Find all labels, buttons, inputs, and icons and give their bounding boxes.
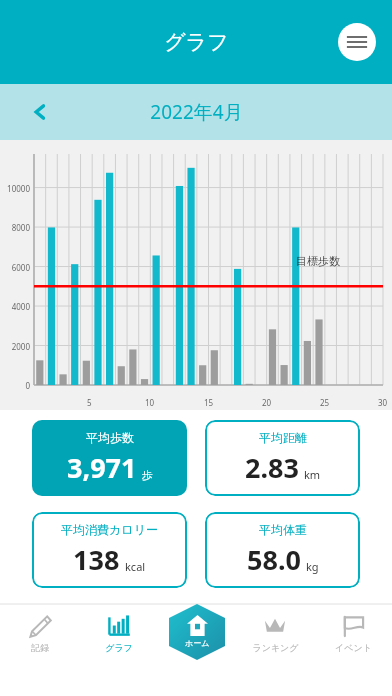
staticText: 2000 (0, 341, 30, 352)
staticText: イベント (335, 642, 372, 653)
staticText: 0 (0, 380, 30, 391)
staticText: 2022年4月 (150, 99, 243, 125)
button[interactable]: 平均歩数 (32, 420, 187, 496)
staticText: 5 (87, 397, 92, 408)
staticText: ランキング (252, 642, 299, 653)
staticText: 15 (204, 397, 214, 408)
staticText: km (304, 467, 321, 482)
button[interactable]: 平均消費カロリー (32, 512, 187, 588)
button[interactable]: Previous month (22, 94, 58, 130)
staticText: 平均消費カロリー (61, 522, 158, 537)
staticText: kg (306, 559, 319, 574)
button[interactable]: ホーム (169, 604, 225, 660)
staticText: グラフ (105, 642, 133, 653)
staticText: 58.0 (247, 541, 301, 578)
button[interactable]: ランキング (236, 604, 314, 653)
button[interactable]: グラフ (79, 604, 158, 653)
staticText: 10000 (0, 183, 30, 194)
staticText: 平均体重 (259, 522, 307, 537)
staticText: ホーム (185, 638, 210, 648)
button[interactable]: Menu (338, 23, 376, 61)
staticText: 記録 (31, 642, 49, 653)
staticText: 3,971 (67, 449, 137, 486)
staticText: 30 (378, 397, 388, 408)
staticText: 4000 (0, 301, 30, 312)
staticText: 6000 (0, 262, 30, 273)
staticText: 歩 (142, 468, 153, 482)
staticText: 2.83 (245, 449, 299, 486)
staticText: 平均距離 (259, 430, 307, 445)
staticText: 目標歩数 (296, 254, 340, 268)
staticText: 10 (145, 397, 155, 408)
button[interactable]: 平均距離 (205, 420, 360, 496)
button[interactable]: 平均体重 (205, 512, 360, 588)
staticText: kcal (125, 559, 146, 574)
staticText: 20 (262, 397, 272, 408)
staticText: 138 (73, 541, 120, 578)
staticText: 8000 (0, 222, 30, 233)
staticText: グラフ (164, 29, 229, 55)
button[interactable]: イベント (314, 604, 392, 653)
staticText: 25 (320, 397, 330, 408)
staticText: 平均歩数 (86, 430, 134, 445)
button[interactable]: 記録 (0, 604, 79, 653)
